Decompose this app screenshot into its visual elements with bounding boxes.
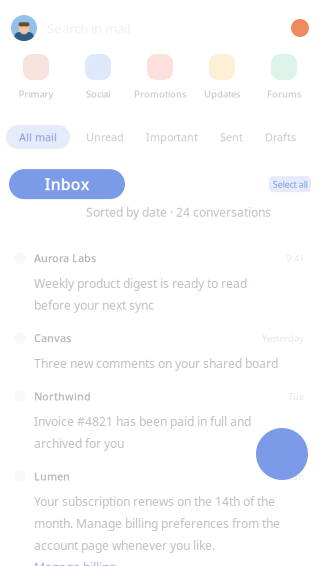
staticText: Search in mail xyxy=(47,19,130,37)
button[interactable]: Drafts xyxy=(259,125,302,149)
button[interactable]: Updates xyxy=(191,54,253,100)
button[interactable]: Northwind xyxy=(0,380,320,460)
button[interactable]: Important xyxy=(140,125,204,149)
button[interactable]: Canvas xyxy=(0,322,320,380)
staticText: Invoice #4821 has been paid in full and xyxy=(34,413,251,429)
staticText: Weekly product digest is ready to read xyxy=(34,275,247,291)
staticText: Inbox xyxy=(44,173,89,195)
button[interactable]: Inbox xyxy=(9,169,125,199)
button[interactable]: Profile xyxy=(291,19,309,37)
button[interactable]: Select all xyxy=(269,176,311,192)
staticText: Your subscription renews on the 14th of … xyxy=(34,493,275,509)
button[interactable]: Forums xyxy=(253,54,315,100)
staticText: Yesterday xyxy=(262,332,304,344)
staticText: Sorted by date · 24 conversations xyxy=(86,204,271,220)
staticText: Canvas xyxy=(34,331,71,345)
button[interactable]: All mail xyxy=(6,125,70,149)
staticText: Unread xyxy=(86,130,124,144)
staticText: archived for you xyxy=(34,435,124,451)
button[interactable]: Unread xyxy=(80,125,130,149)
staticText: Manage billing xyxy=(34,559,116,566)
button[interactable]: Sent xyxy=(214,125,249,149)
staticText: Important xyxy=(146,130,198,144)
staticText: Tue xyxy=(288,390,304,402)
staticText: Lumen xyxy=(34,469,70,483)
staticText: Drafts xyxy=(265,130,296,144)
button[interactable]: Primary xyxy=(5,54,67,100)
staticText: Select all xyxy=(272,178,307,190)
staticText: month. Manage billing preferences from t… xyxy=(34,515,280,531)
staticText: Aurora Labs xyxy=(34,251,96,265)
staticText: All mail xyxy=(19,130,57,144)
staticText: account page whenever you like. xyxy=(34,537,215,553)
button[interactable]: Account xyxy=(11,15,37,41)
staticText: Updates xyxy=(204,88,240,100)
staticText: before your next sync xyxy=(34,297,154,313)
staticText: Mon xyxy=(284,470,304,483)
staticText: Three new comments on your shared board xyxy=(34,355,278,371)
staticText: Promotions xyxy=(134,88,186,100)
staticText: Forums xyxy=(267,88,301,100)
staticText: Sent xyxy=(220,130,243,144)
button[interactable]: Aurora Labs xyxy=(0,242,320,322)
staticText: 9:41 xyxy=(286,252,304,264)
button[interactable]: Promotions xyxy=(129,54,191,100)
button[interactable]: Lumen xyxy=(0,460,320,566)
button[interactable]: Compose xyxy=(256,428,308,480)
staticText: Primary xyxy=(18,88,53,100)
staticText: Northwind xyxy=(34,389,91,403)
button[interactable]: Social xyxy=(67,54,129,100)
staticText: Social xyxy=(86,88,110,100)
